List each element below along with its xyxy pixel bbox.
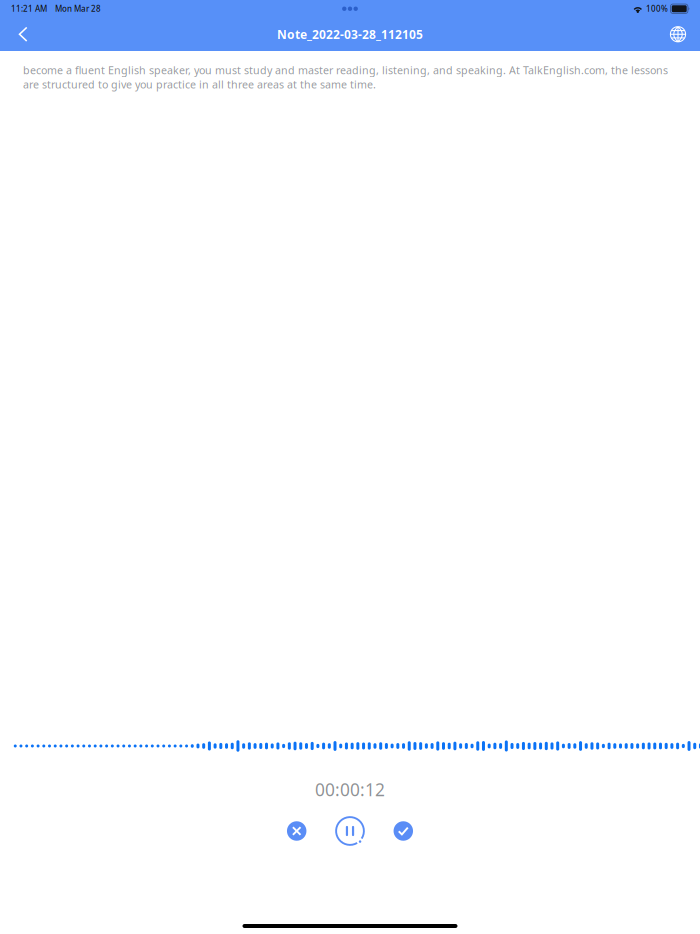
- staticText: 11:21 AM: [11, 3, 47, 14]
- staticText: 100%: [646, 3, 668, 14]
- button[interactable]: Cancel recording: [282, 816, 312, 846]
- staticText: become a fluent English speaker, you mus…: [23, 63, 668, 91]
- button[interactable]: Finish recording: [388, 816, 418, 846]
- button[interactable]: Back: [0, 17, 50, 51]
- staticText: 00:00:12: [315, 778, 385, 801]
- staticText: Mon Mar 28: [55, 3, 101, 14]
- staticText: Note_2022-03-28_112105: [277, 26, 423, 42]
- button[interactable]: Pause recording: [335, 816, 365, 846]
- button[interactable]: Language: [654, 17, 700, 51]
